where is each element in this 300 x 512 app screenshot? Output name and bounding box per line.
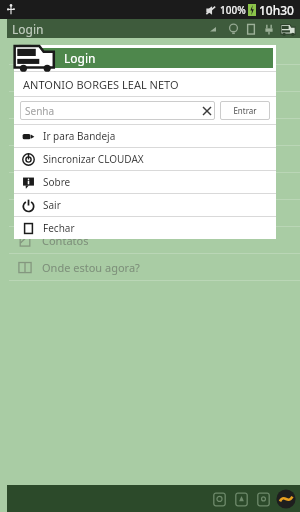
staticText: 10h30	[259, 2, 294, 18]
staticText: Fechar	[43, 221, 75, 235]
button[interactable]: Funcionalidades	[7, 38, 300, 64]
staticText: Ir para Bandeja	[43, 129, 116, 143]
staticText: Energia	[42, 71, 82, 86]
staticText: Tarefas	[42, 206, 80, 221]
button[interactable]: Contatos	[7, 119, 300, 145]
button[interactable]: Limpar	[199, 103, 215, 119]
button[interactable]: Resumo	[7, 92, 300, 118]
button[interactable]: Aplicativo	[274, 487, 298, 511]
staticText: Contatos	[42, 125, 89, 140]
staticText: Resumo	[42, 98, 85, 113]
staticText: Anotações	[42, 179, 97, 194]
staticText: ANTONIO BORGES LEAL NETO	[23, 77, 179, 92]
button[interactable]: Ir para Bandeja	[14, 125, 276, 147]
staticText: Pesquisa	[42, 152, 88, 167]
staticText: Funcionalidades	[42, 44, 126, 59]
button[interactable]: Mensagens	[208, 488, 230, 510]
staticText: Contatos	[42, 233, 89, 248]
button[interactable]: Anotações	[7, 173, 300, 199]
staticText: Entrar	[233, 105, 257, 116]
button[interactable]: Contatos	[7, 227, 300, 253]
button[interactable]: Perfil	[230, 488, 252, 510]
button[interactable]: Luz	[224, 20, 242, 38]
button[interactable]: Tomada	[260, 20, 278, 38]
button[interactable]: Sair	[14, 194, 276, 216]
staticText: Sobre	[43, 175, 71, 189]
button[interactable]: Onde estou agora?	[7, 254, 300, 280]
staticText: Senha	[25, 104, 199, 118]
staticText: Onde estou agora?	[42, 260, 140, 275]
staticText: Login	[12, 21, 44, 37]
staticText: Sair	[43, 198, 61, 212]
button[interactable]: Caminhão	[278, 19, 298, 38]
staticText: Login	[64, 50, 96, 66]
staticText: Sincronizar CLOUDAX	[43, 152, 144, 166]
button[interactable]: Tarefas	[7, 200, 300, 226]
button[interactable]: ANTONIO BORGES LEAL NETO	[14, 72, 276, 96]
button[interactable]: Sincronizar CLOUDAX	[14, 148, 276, 170]
button[interactable]: Entrar	[220, 101, 270, 120]
button[interactable]: Energia	[7, 65, 300, 91]
button[interactable]: Pesquisa	[7, 146, 300, 172]
button[interactable]: Bateria	[242, 20, 260, 38]
button[interactable]: Senha	[20, 101, 215, 120]
button[interactable]: Sobre	[14, 171, 276, 193]
staticText: 100%	[220, 3, 246, 17]
button[interactable]: Câmera	[252, 488, 274, 510]
button[interactable]: Fechar	[14, 217, 276, 239]
